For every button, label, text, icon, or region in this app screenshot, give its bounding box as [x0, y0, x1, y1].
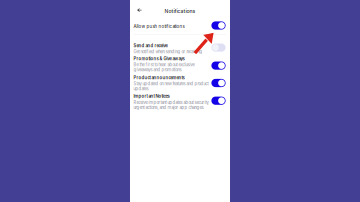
staticText: Important Notices: [133, 94, 169, 99]
staticText: Product announcements: [133, 75, 184, 80]
button[interactable]: Allow push notifications: [133, 20, 225, 32]
staticText: Promotions & Giveaways: [133, 56, 184, 61]
staticText: Allow push notifications: [133, 24, 184, 29]
staticText: Send and receive: [133, 43, 167, 48]
staticText: Stay updated on new features and product…: [133, 81, 208, 91]
button[interactable]: Promotions & Giveaways: [133, 56, 209, 72]
button[interactable]: Send and receive: [133, 43, 209, 54]
staticText: Receive important updates about security…: [133, 100, 209, 110]
button[interactable]: Back: [134, 5, 145, 15]
button[interactable]: Important Notices: [133, 94, 209, 110]
staticText: Get notified when sending or receiving: [133, 49, 202, 54]
button[interactable]: Product announcements: [133, 75, 209, 91]
staticText: Be the first to hear about exclusive giv…: [133, 62, 194, 72]
staticText: Notifications: [164, 8, 195, 14]
